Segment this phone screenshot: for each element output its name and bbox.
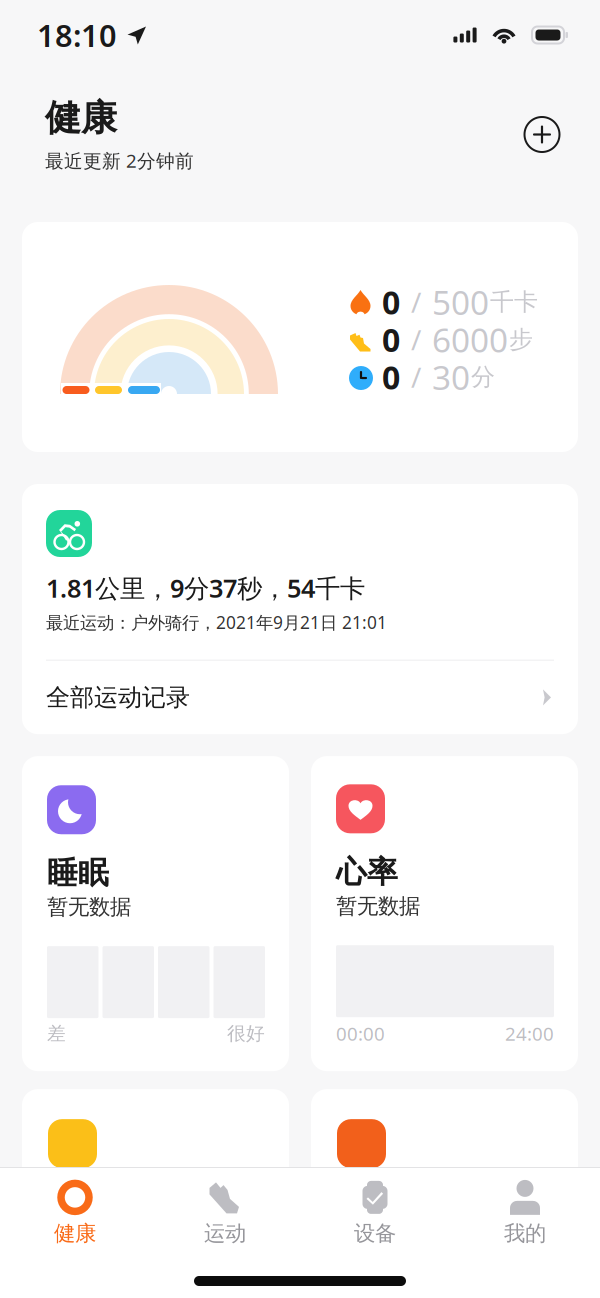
staticText: 0 — [382, 318, 400, 361]
button[interactable]: 睡眠 — [22, 756, 289, 1071]
button[interactable]: 健康 — [0, 1167, 150, 1255]
staticText: 设备 — [354, 1220, 396, 1247]
staticText: 500 — [432, 280, 489, 324]
button[interactable]: 运动 — [150, 1167, 300, 1255]
staticText: 最近运动：户外骑行，2021年9月21日 21:01 — [46, 611, 387, 634]
staticText: 健康 — [45, 96, 117, 140]
staticText: 暂无数据 — [336, 893, 420, 919]
staticText: 睡眠 — [47, 854, 109, 892]
staticText: 千卡 — [490, 287, 538, 317]
staticText: / — [411, 283, 421, 321]
staticText: 18:10 — [37, 15, 117, 55]
button[interactable]: 心率 — [311, 756, 578, 1071]
button[interactable]: 全部运动记录 — [46, 661, 554, 734]
staticText: 6000 — [432, 317, 508, 362]
staticText: 健康 — [54, 1220, 96, 1247]
button[interactable] — [311, 1089, 578, 1298]
staticText: 00:00 — [336, 1021, 385, 1046]
staticText: 运动 — [204, 1220, 246, 1247]
staticText: 暂无数据 — [47, 894, 131, 920]
staticText: 全部运动记录 — [46, 683, 190, 712]
staticText: 很好 — [227, 1022, 265, 1045]
staticText: 0 — [382, 281, 400, 323]
button[interactable]: 设备 — [300, 1167, 450, 1255]
staticText: 差 — [47, 1022, 66, 1045]
staticText: 心率 — [336, 853, 398, 891]
button[interactable] — [22, 1089, 289, 1298]
staticText: 30 — [432, 355, 470, 399]
staticText: / — [411, 321, 421, 358]
staticText: 分 — [471, 362, 495, 392]
staticText: 0 — [382, 356, 400, 398]
staticText: 我的 — [504, 1220, 546, 1247]
button[interactable]: 添加 — [522, 114, 562, 154]
staticText: 1.81公里，9分37秒，54千卡 — [46, 571, 365, 605]
staticText: 24:00 — [505, 1021, 554, 1046]
button[interactable]: 我的 — [450, 1167, 600, 1255]
staticText: 最近更新 2分钟前 — [45, 148, 194, 173]
staticText: / — [411, 358, 421, 396]
staticText: 步 — [509, 325, 533, 354]
